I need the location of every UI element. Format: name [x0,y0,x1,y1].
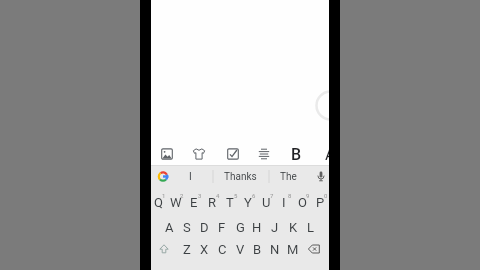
staticText: C [218,242,227,257]
staticText: 1 [162,192,166,199]
staticText: 8 [288,192,292,199]
staticText: B [253,242,262,257]
staticText: X [200,242,209,257]
staticText: Thanks [224,171,257,183]
staticText: D [200,220,209,235]
staticText: Q [154,195,163,210]
staticText: N [270,242,280,257]
button[interactable] [222,143,244,165]
staticText: S [183,220,191,235]
button[interactable]: The [264,167,312,187]
staticText: 0 [324,192,328,199]
button[interactable]: Thanks [216,167,264,187]
button[interactable]: N [251,239,299,259]
staticText: R [208,195,217,210]
staticText: 5 [234,192,238,199]
button[interactable]: B [233,239,281,259]
button[interactable]: V [216,239,264,259]
staticText: 2 [180,192,184,199]
staticText: E [190,195,198,210]
button[interactable]: E [170,192,218,212]
staticText: I [282,195,286,210]
staticText: P [316,195,325,210]
button[interactable]: A [306,144,329,164]
button[interactable]: F [198,217,246,237]
staticText: B [291,145,302,164]
button[interactable]: C [198,239,246,259]
staticText: V [236,242,245,257]
staticText: 4 [216,192,220,199]
staticText: G [236,220,245,235]
button[interactable]: H [233,217,281,237]
button[interactable]: D [180,217,228,237]
staticText: I [189,171,192,183]
button[interactable] [253,143,275,165]
staticText: H [252,220,262,235]
button[interactable] [156,143,178,165]
staticText: A [165,220,174,235]
staticText: U [262,195,271,210]
button[interactable] [188,143,210,165]
staticText: 3 [198,192,202,199]
button[interactable]: R [188,192,236,212]
staticText: J [271,220,279,235]
staticText: A [325,145,329,164]
button[interactable]: J [251,217,299,237]
staticText: 9 [306,192,310,199]
staticText: The [280,171,297,183]
button[interactable]: X [180,239,228,259]
staticText: 6 [252,192,256,199]
button[interactable]: U [242,192,290,212]
staticText: M [287,242,299,257]
staticText: F [218,220,226,235]
staticText: W [170,195,182,210]
button[interactable]: I [260,192,308,212]
button[interactable]: Q [151,192,182,212]
button[interactable]: S [163,217,211,237]
staticText: L [307,220,315,235]
button[interactable]: P [296,192,329,212]
staticText: Z [183,242,191,257]
button[interactable]: G [216,217,264,237]
button[interactable]: B [272,144,320,164]
button[interactable]: M [269,239,317,259]
staticText: 7 [270,192,274,199]
staticText: K [289,220,298,235]
button[interactable]: A [151,217,193,237]
button[interactable]: K [269,217,317,237]
button[interactable]: I [166,167,214,187]
staticText: O [298,195,307,210]
button[interactable]: T [206,192,254,212]
button[interactable]: Y [224,192,272,212]
button[interactable]: W [152,192,200,212]
staticText: Y [244,195,252,210]
button[interactable]: O [278,192,326,212]
button[interactable]: L [287,217,329,237]
button[interactable]: Z [163,239,211,259]
staticText: T [226,195,234,210]
